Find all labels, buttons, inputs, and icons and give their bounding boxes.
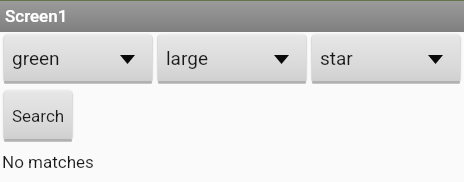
other: Open green dropdown bbox=[120, 55, 135, 64]
button[interactable]: star bbox=[312, 34, 460, 84]
button[interactable]: Search bbox=[4, 90, 72, 142]
staticText: No matches bbox=[2, 152, 94, 172]
staticText: large bbox=[166, 47, 208, 69]
other: Open star dropdown bbox=[428, 55, 443, 64]
button[interactable]: green bbox=[4, 34, 152, 84]
other: Open large dropdown bbox=[274, 55, 289, 64]
staticText: star bbox=[320, 47, 353, 69]
staticText: green bbox=[12, 47, 60, 69]
staticText: Search bbox=[12, 106, 65, 126]
staticText: Screen1 bbox=[5, 6, 68, 26]
button[interactable]: large bbox=[158, 34, 306, 84]
